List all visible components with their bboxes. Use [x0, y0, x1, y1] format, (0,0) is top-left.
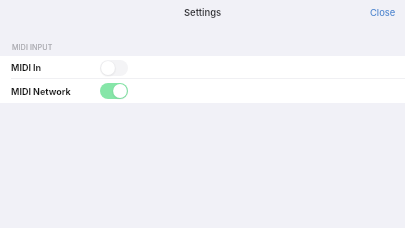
- button[interactable]: MIDI In: [0, 57, 405, 78]
- staticText: Settings: [184, 7, 222, 18]
- button[interactable]: MIDI In switch, off: [100, 60, 128, 76]
- staticText: MIDI In: [11, 62, 42, 73]
- staticText: MIDI Network: [11, 86, 71, 97]
- button[interactable]: Close: [362, 1, 404, 24]
- button[interactable]: MIDI Network: [0, 79, 405, 103]
- staticText: MIDI INPUT: [12, 43, 53, 52]
- button[interactable]: MIDI Network switch, on: [100, 83, 128, 99]
- staticText: Close: [370, 7, 396, 18]
